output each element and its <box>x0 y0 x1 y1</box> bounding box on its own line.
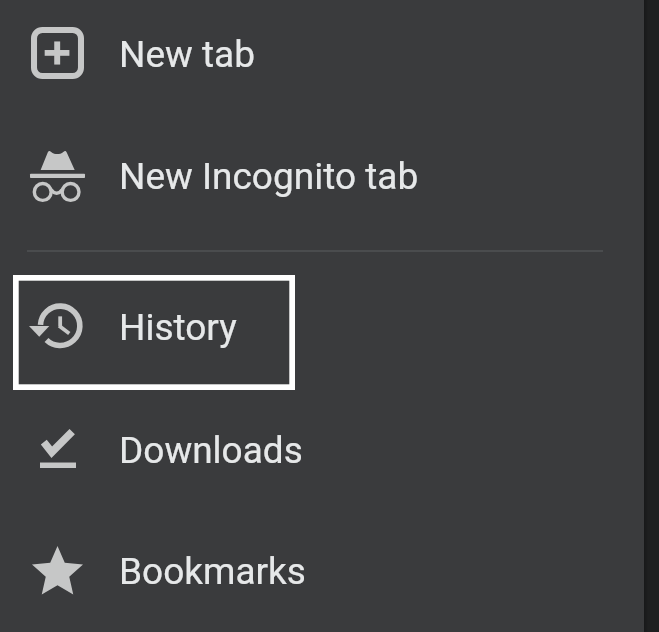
other: New Incognito tab <box>30 151 85 202</box>
button[interactable]: History <box>0 275 644 390</box>
button[interactable]: Bookmarks <box>0 511 644 632</box>
button[interactable]: Downloads <box>0 391 644 511</box>
button[interactable]: New Incognito tab <box>0 118 644 248</box>
staticText: Bookmarks <box>119 550 306 593</box>
other: New tab <box>31 27 84 79</box>
other: Bookmarks <box>32 546 83 594</box>
other: Downloads <box>40 428 76 468</box>
staticText: New tab <box>119 33 256 76</box>
staticText: New Incognito tab <box>119 155 419 198</box>
staticText: Downloads <box>119 429 303 472</box>
staticText: History <box>119 306 237 349</box>
button[interactable]: New tab <box>0 0 644 118</box>
other: History <box>29 304 82 349</box>
